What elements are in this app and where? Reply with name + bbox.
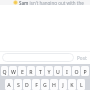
button[interactable]: F — [32, 79, 40, 90]
button[interactable]: D — [23, 79, 31, 90]
staticText: Post — [77, 55, 87, 61]
button[interactable]: I — [63, 66, 71, 76]
button[interactable]: Sam isn't hanging out with the kids — [0, 0, 90, 5]
staticText: O — [74, 68, 79, 75]
button[interactable]: Y — [45, 66, 53, 76]
button[interactable]: O — [72, 66, 80, 76]
staticText: Q — [2, 68, 7, 75]
staticText: H — [52, 81, 56, 88]
button[interactable]: H — [50, 79, 58, 90]
staticText: T — [39, 68, 42, 75]
button[interactable]: T — [36, 66, 44, 76]
button[interactable]: G — [41, 79, 49, 90]
staticText: E — [21, 68, 24, 75]
staticText: L — [80, 81, 83, 88]
button[interactable]: Post — [77, 53, 87, 62]
button[interactable]: P — [81, 66, 89, 76]
button[interactable]: Q — [1, 66, 8, 76]
staticText: K — [70, 81, 74, 88]
staticText: R — [29, 68, 33, 75]
staticText: J — [62, 81, 64, 88]
staticText: F — [35, 81, 38, 88]
staticText: P — [83, 68, 87, 75]
button[interactable]: L — [77, 79, 85, 90]
button[interactable]: A — [5, 79, 13, 90]
button[interactable]: E — [18, 66, 26, 76]
button[interactable]: S — [14, 79, 22, 90]
staticText: A — [7, 81, 11, 88]
staticText: Sam isn't hanging out with the kids — [19, 0, 90, 5]
staticText: I — [66, 68, 68, 75]
staticText: U — [56, 68, 60, 75]
staticText: D — [25, 81, 29, 88]
button[interactable]: K — [68, 79, 76, 90]
button[interactable]: J — [59, 79, 67, 90]
button[interactable]: W — [9, 66, 17, 76]
staticText: W — [11, 68, 16, 75]
staticText: S — [17, 81, 20, 88]
button[interactable] — [2, 53, 74, 62]
button[interactable]: U — [54, 66, 62, 76]
staticText: G — [43, 81, 47, 88]
staticText: Y — [47, 68, 51, 75]
button[interactable]: R — [27, 66, 35, 76]
